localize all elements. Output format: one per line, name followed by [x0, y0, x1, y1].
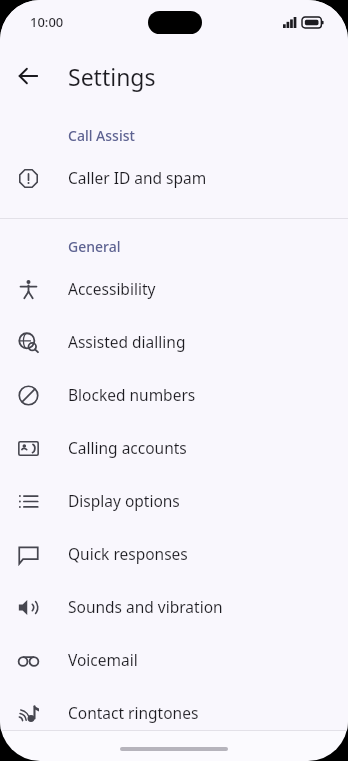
staticText: Settings — [68, 61, 156, 92]
staticText: Contact ringtones — [68, 702, 199, 723]
button[interactable]: Quick responses — [0, 527, 348, 580]
staticText: Assisted dialling — [68, 331, 186, 352]
staticText: Call Assist — [68, 126, 135, 145]
button[interactable]: Caller ID and spam — [0, 151, 348, 204]
button[interactable]: Sounds and vibration — [0, 580, 348, 633]
staticText: Sounds and vibration — [68, 596, 223, 617]
button[interactable]: Accessibility — [0, 262, 348, 315]
button[interactable]: Blocked numbers — [0, 368, 348, 421]
button[interactable]: Voicemail — [0, 633, 348, 686]
staticText: Display options — [68, 490, 180, 511]
staticText: Quick responses — [68, 543, 188, 564]
staticText: General — [68, 237, 121, 256]
staticText: Calling accounts — [68, 437, 187, 458]
button[interactable]: Display options — [0, 474, 348, 527]
button[interactable]: Assisted dialling — [0, 315, 348, 368]
staticText: Accessibility — [68, 278, 156, 299]
button[interactable]: Back — [4, 52, 52, 100]
staticText: Blocked numbers — [68, 384, 196, 405]
staticText: 10:00 — [30, 13, 64, 31]
staticText: Caller ID and spam — [68, 167, 207, 188]
staticText: Voicemail — [68, 649, 138, 670]
button[interactable]: Contact ringtones — [0, 686, 348, 739]
button[interactable]: Calling accounts — [0, 421, 348, 474]
